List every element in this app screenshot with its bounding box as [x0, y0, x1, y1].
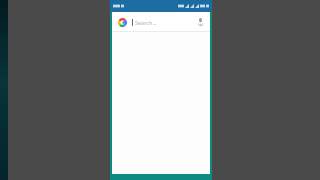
button[interactable]: Google — [112, 12, 210, 32]
staticText: Search... — [135, 19, 195, 26]
button[interactable]: Voice search — [195, 17, 205, 27]
button[interactable]: Google — [117, 17, 127, 27]
